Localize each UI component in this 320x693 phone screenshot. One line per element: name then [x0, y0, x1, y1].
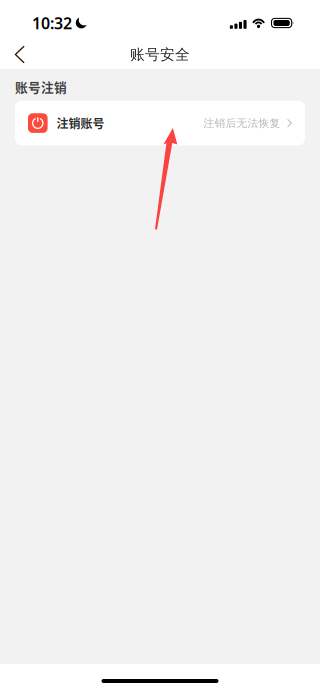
staticText: 10:32 [32, 12, 72, 34]
staticText: 账号注销 [15, 77, 67, 96]
button[interactable]: 注销账号 [15, 101, 305, 145]
button[interactable]: Back [0, 38, 47, 71]
staticText: 账号安全 [130, 45, 190, 63]
staticText: 注销后无法恢复 [203, 116, 280, 130]
staticText: 注销账号 [57, 114, 105, 132]
